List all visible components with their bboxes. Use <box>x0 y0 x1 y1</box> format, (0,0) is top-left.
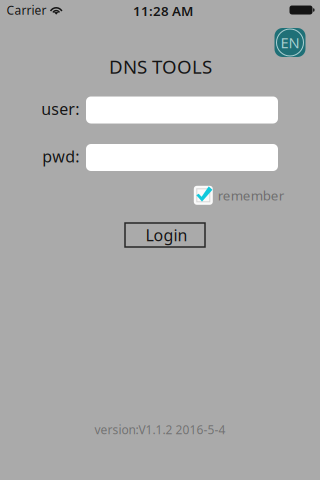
staticText: pwd: <box>42 146 79 167</box>
staticText: user: <box>41 98 79 119</box>
button[interactable]: pwd: <box>86 144 278 171</box>
button[interactable]: remember <box>194 186 285 205</box>
staticText: remember <box>218 186 285 204</box>
button[interactable]: Language: EN <box>274 28 305 57</box>
staticText: Carrier <box>6 2 46 18</box>
staticText: DNS TOOLS <box>109 54 212 79</box>
staticText: Login <box>145 224 187 246</box>
staticText: 11:28 AM <box>133 2 193 20</box>
staticText: EN <box>280 33 299 52</box>
button[interactable]: user: <box>86 96 278 123</box>
button[interactable]: Login <box>125 223 205 247</box>
staticText: version:V1.1.2 2016-5-4 <box>94 421 225 437</box>
